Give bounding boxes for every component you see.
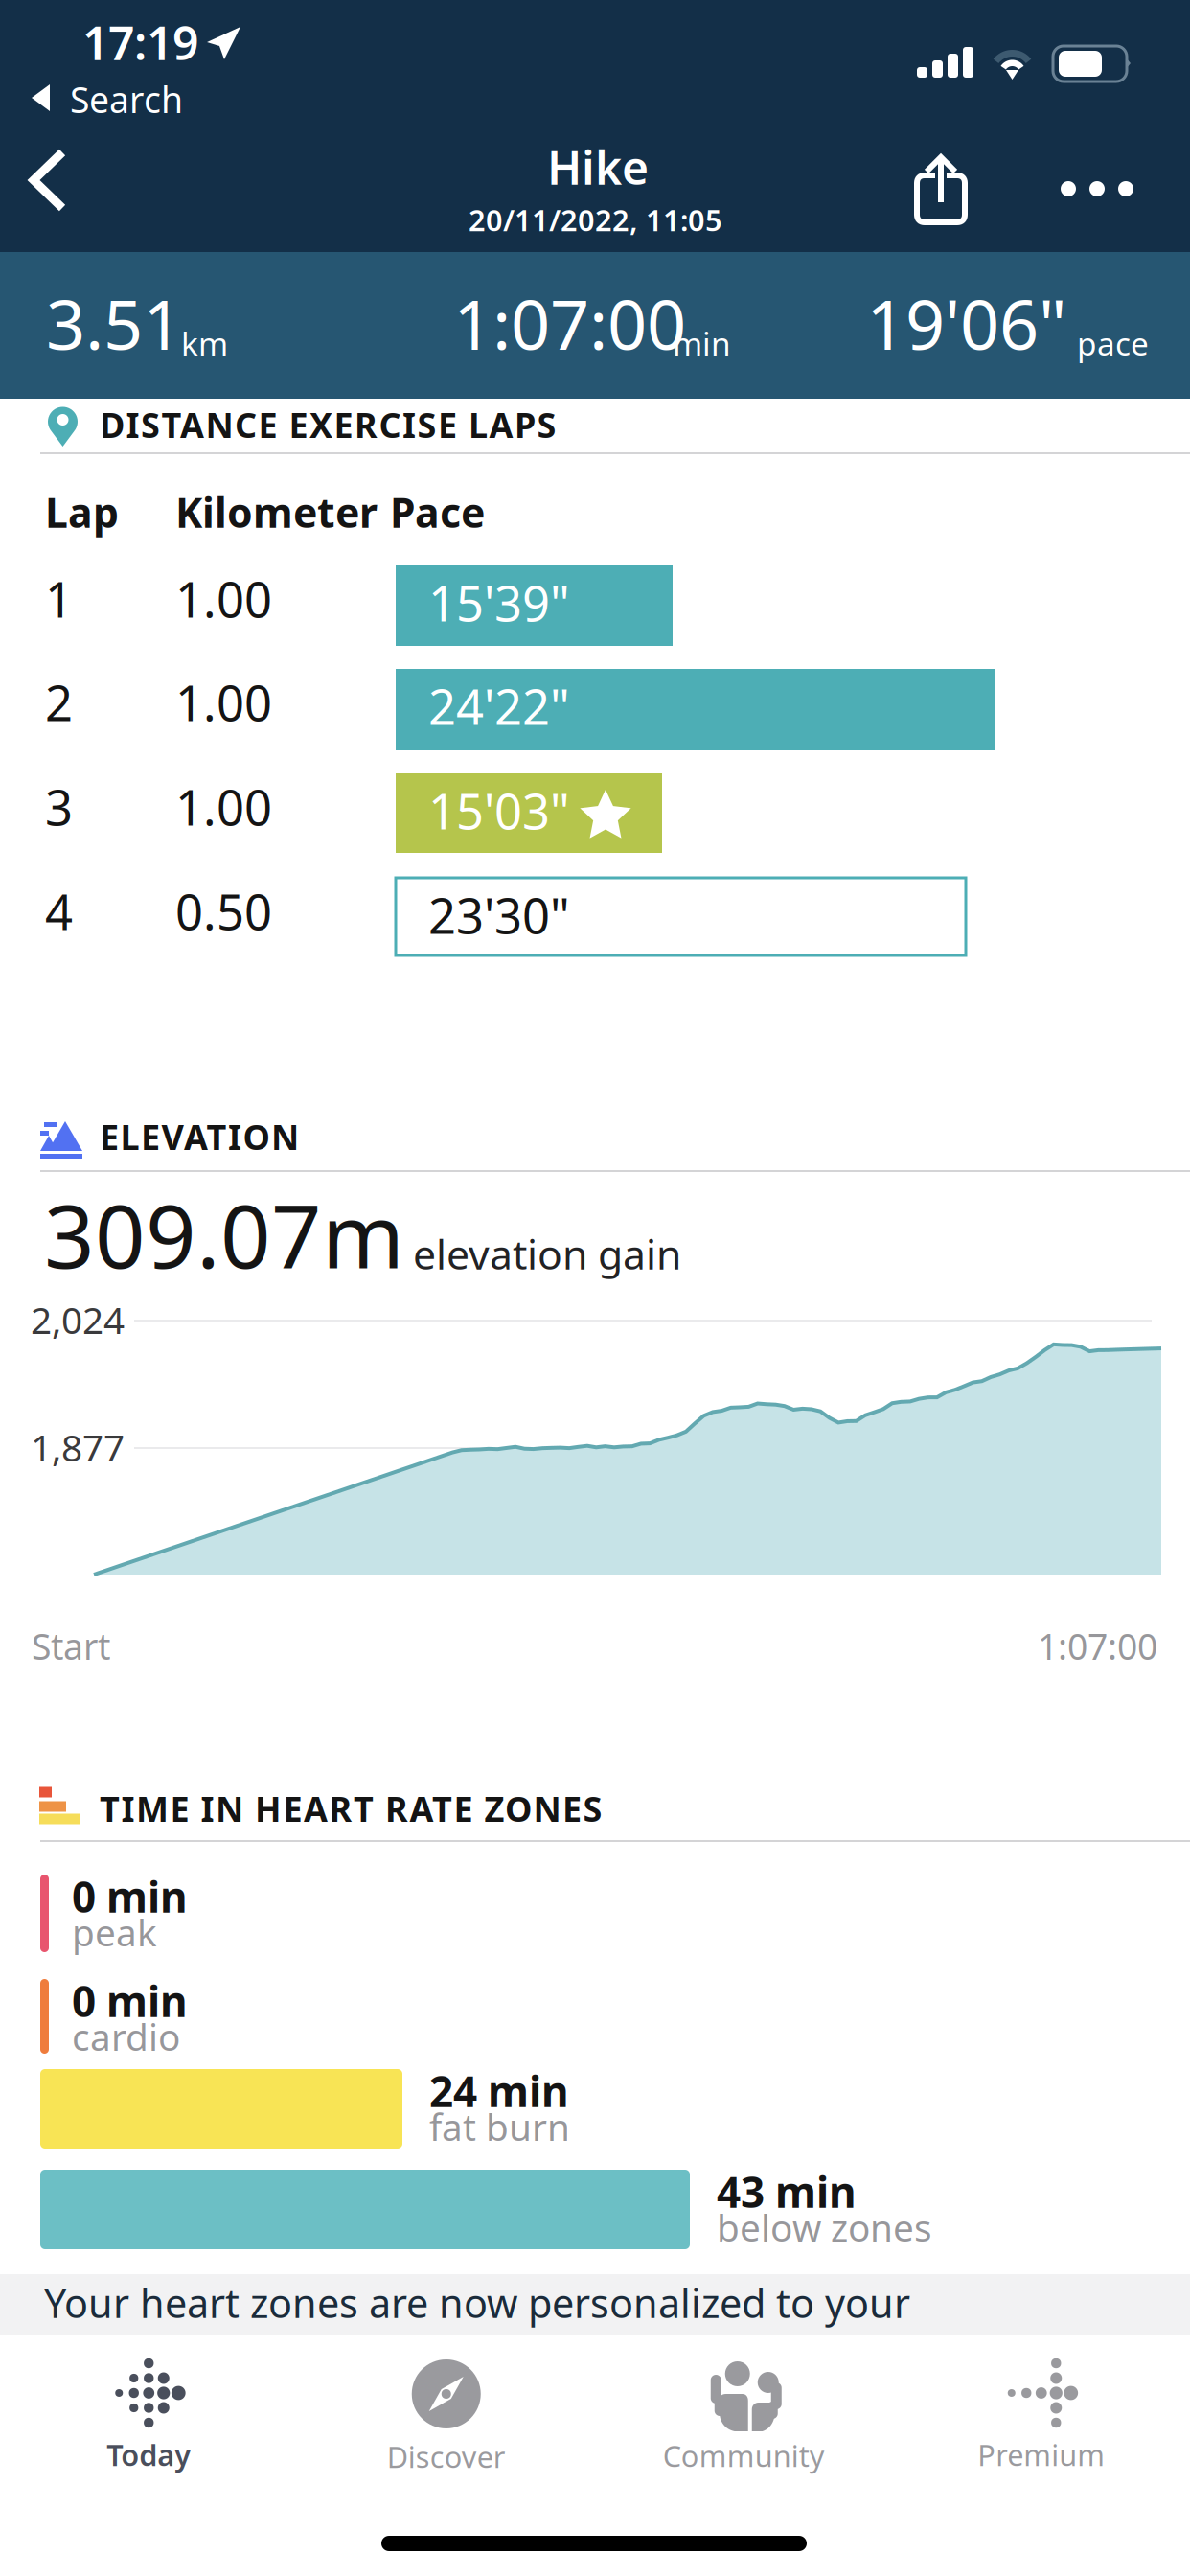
staticText: 15'03" [428,778,570,843]
staticText: Lap [45,485,119,539]
button[interactable]: Share [899,138,983,241]
staticText: 24 min [429,2063,569,2119]
staticText: 15'39" [428,570,570,635]
staticText: 4 [45,879,73,944]
staticText: below zones [717,2202,932,2252]
staticText: 0.50 [175,879,272,944]
staticText: Premium [977,2435,1105,2474]
staticText: 20/11/2022, 11:05 [469,200,722,239]
staticText: 2,024 [31,1295,125,1344]
staticText: Search [70,75,183,123]
button[interactable]: Discover [297,2348,595,2501]
staticText: 17:19 [82,12,198,73]
staticText: 24'22" [428,674,570,738]
staticText: 43 min [717,2163,857,2219]
staticText: 3 [45,775,73,839]
staticText: 309.07m [44,1175,404,1293]
staticText: min [673,322,731,364]
staticText: peak [72,1907,157,1956]
staticText: elevation gain [413,1227,681,1281]
staticText: 1.00 [175,775,272,839]
staticText: 23'30" [428,883,570,947]
staticText: Your heart zones are now personalized to… [44,2276,910,2329]
button[interactable]: Today [0,2348,297,2501]
staticText: Community [663,2436,825,2475]
staticText: 0 min [72,1973,188,2029]
staticText: 1:07:00 [453,277,686,369]
staticText: 1.00 [175,670,272,735]
button[interactable]: More options [1041,162,1153,216]
staticText: pace [1077,322,1149,364]
staticText: cardio [72,2012,180,2061]
staticText: 1 [45,567,73,631]
staticText: Today [107,2435,191,2474]
staticText: Kilometer [175,485,378,539]
staticText: 1,877 [31,1422,125,1472]
staticText: 0 min [72,1868,188,1924]
button[interactable]: Community [595,2348,892,2501]
staticText: 1:07:00 [1038,1622,1157,1670]
staticText: Discover [387,2437,506,2476]
staticText: Start [32,1622,110,1670]
staticText: DISTANCE EXERCISE LAPS [100,402,556,447]
staticText: 2 [45,670,73,735]
button[interactable]: Premium [892,2348,1190,2501]
staticText: Pace [390,485,485,539]
staticText: Hike [547,136,649,197]
staticText: 19'06" [866,277,1066,369]
staticText: TIME IN HEART RATE ZONES [100,1785,602,1831]
staticText: km [181,322,228,364]
staticText: 1.00 [175,567,272,631]
staticText: ELEVATION [100,1114,299,1159]
staticText: 3.51 [46,277,182,369]
staticText: fat burn [429,2102,570,2151]
button[interactable]: Back [10,132,86,228]
